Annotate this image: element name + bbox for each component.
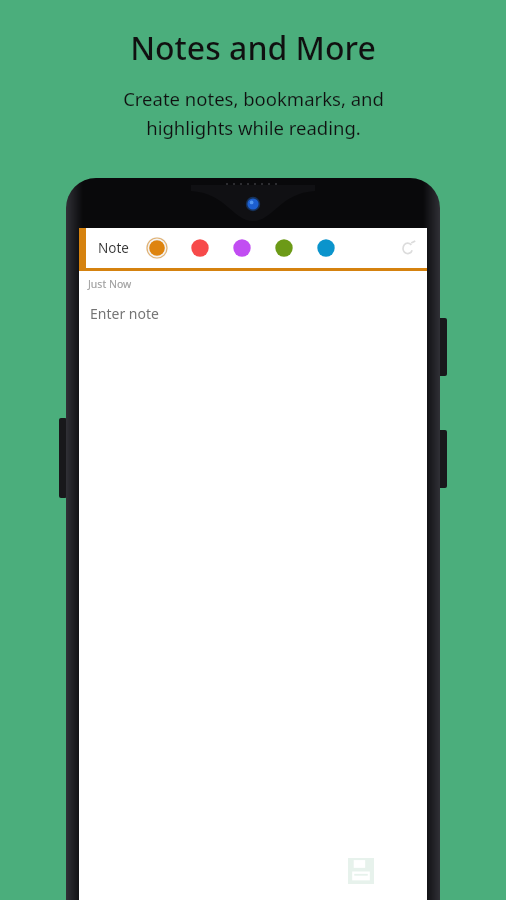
staticText: Note xyxy=(98,239,129,257)
button[interactable]: Colour xyxy=(316,238,336,258)
button[interactable]: New note xyxy=(393,233,423,263)
button[interactable]: Colour xyxy=(232,238,252,258)
button[interactable]: Colour xyxy=(190,238,210,258)
button[interactable]: Enter note xyxy=(79,302,427,331)
staticText: Create notes, bookmarks, and xyxy=(123,86,384,111)
staticText: Notes and More xyxy=(130,26,376,70)
staticText: Just Now xyxy=(88,277,132,291)
button[interactable]: Note xyxy=(96,237,131,259)
button[interactable]: Colour xyxy=(146,237,168,259)
staticText: highlights while reading. xyxy=(146,115,361,140)
button[interactable]: Colour xyxy=(274,238,294,258)
staticText: Enter note xyxy=(90,304,159,323)
button[interactable]: Save xyxy=(348,858,374,884)
